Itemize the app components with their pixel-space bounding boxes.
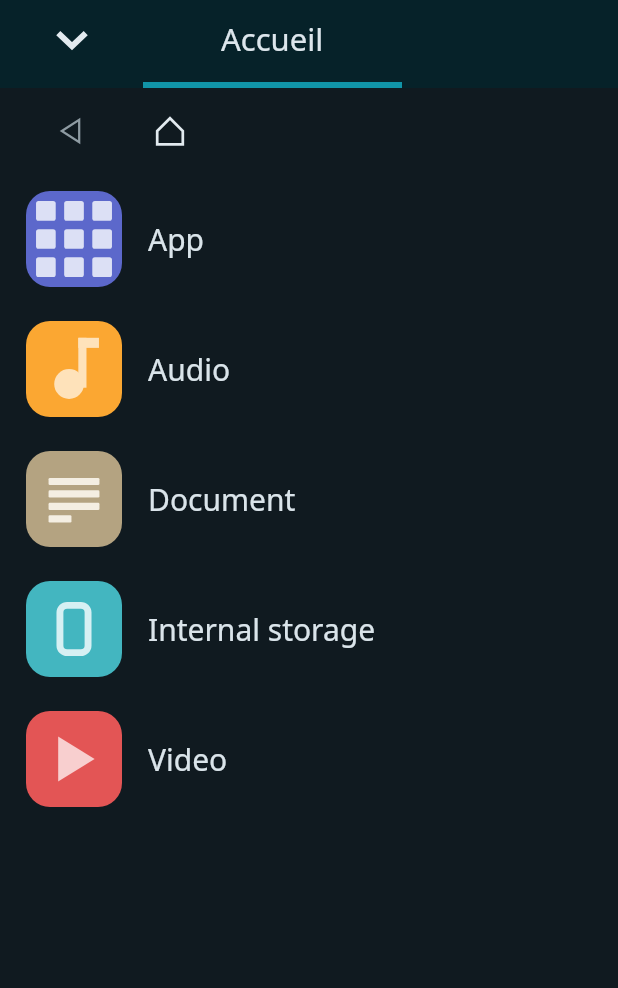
staticText: Video bbox=[148, 739, 228, 780]
button[interactable]: Back bbox=[42, 101, 102, 161]
staticText: Document bbox=[148, 479, 296, 520]
staticText: Internal storage bbox=[148, 609, 376, 650]
staticText: Audio bbox=[148, 349, 231, 390]
button[interactable]: Expand bbox=[40, 8, 104, 72]
button[interactable]: Audio bbox=[0, 304, 618, 434]
staticText: Accueil bbox=[221, 18, 324, 60]
button[interactable]: Internal storage bbox=[0, 564, 618, 694]
button[interactable]: Home bbox=[140, 101, 200, 161]
button[interactable]: Accueil bbox=[143, 0, 402, 88]
button[interactable]: Video bbox=[0, 694, 618, 824]
button[interactable]: Document bbox=[0, 434, 618, 564]
button[interactable]: App bbox=[0, 174, 618, 304]
staticText: App bbox=[148, 219, 205, 260]
